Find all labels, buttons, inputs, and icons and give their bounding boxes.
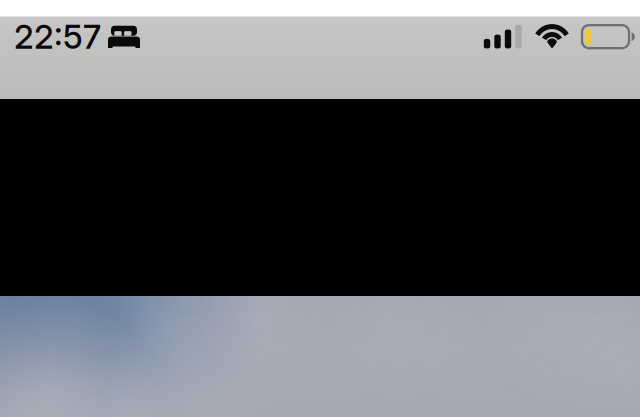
staticText: 22:57 — [14, 16, 101, 57]
